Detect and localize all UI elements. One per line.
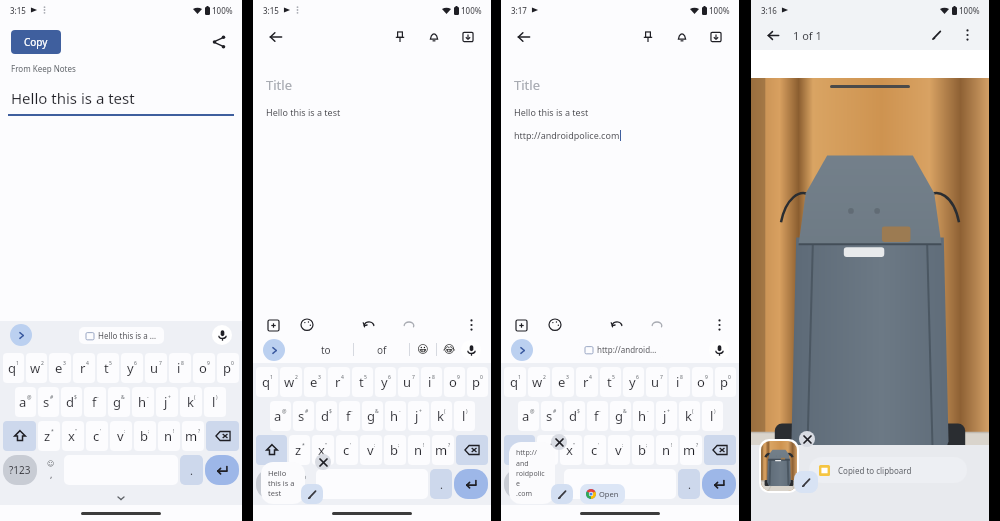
button[interactable]: y xyxy=(623,367,644,397)
button[interactable]: Reminder xyxy=(423,26,445,48)
button[interactable]: h xyxy=(385,401,406,431)
button[interactable]: k xyxy=(679,401,700,431)
button[interactable]: to xyxy=(299,343,353,357)
button[interactable]: Voice input xyxy=(212,325,232,345)
button[interactable]: s xyxy=(541,401,562,431)
button[interactable]: Dismiss xyxy=(315,454,331,470)
button[interactable]: e xyxy=(49,353,71,383)
button[interactable]: b xyxy=(632,435,654,465)
button[interactable]: l xyxy=(454,401,475,431)
button[interactable]: c xyxy=(86,421,108,451)
button[interactable]: Enter xyxy=(702,469,736,499)
button[interactable]: i xyxy=(669,367,690,397)
button[interactable]: a xyxy=(15,387,36,417)
button[interactable]: u xyxy=(646,367,667,397)
button[interactable]: Shift xyxy=(3,421,36,451)
button[interactable]: Redo xyxy=(400,316,418,334)
button[interactable]: Add xyxy=(264,316,282,334)
button[interactable]: Voice input xyxy=(709,340,729,360)
button[interactable]: Space xyxy=(316,469,428,499)
button[interactable]: Pin xyxy=(389,26,411,48)
button[interactable]: d xyxy=(61,387,82,417)
button[interactable]: ☺ xyxy=(39,455,62,485)
button[interactable]: Shift xyxy=(504,435,535,465)
button[interactable]: j xyxy=(156,387,178,417)
button[interactable]: Back xyxy=(513,26,535,48)
button[interactable]: Palette xyxy=(546,316,564,334)
button[interactable]: Archive xyxy=(457,26,479,48)
button[interactable]: o xyxy=(692,367,713,397)
button[interactable]: Backspace xyxy=(456,435,488,465)
button[interactable]: z xyxy=(38,421,60,451)
button[interactable]: m xyxy=(182,421,204,451)
button[interactable]: Voice input xyxy=(461,340,481,360)
button[interactable]: x xyxy=(312,435,334,465)
button[interactable]: u xyxy=(398,367,419,397)
button[interactable]: k xyxy=(180,387,202,417)
button[interactable]: a xyxy=(270,401,291,431)
button[interactable]: t xyxy=(97,353,119,383)
button[interactable]: http://android… xyxy=(585,344,657,355)
button[interactable]: v xyxy=(110,421,132,451)
button[interactable]: Enter xyxy=(454,469,488,499)
button[interactable]: r xyxy=(576,367,598,397)
button[interactable]: b xyxy=(384,435,406,465)
button[interactable]: j xyxy=(656,401,677,431)
button[interactable]: g xyxy=(108,387,130,417)
button[interactable]: q xyxy=(504,367,526,397)
button[interactable]: Edit xyxy=(551,484,573,504)
button[interactable]: g xyxy=(610,401,631,431)
button[interactable]: 😂 xyxy=(437,343,461,356)
button[interactable]: ?123 xyxy=(256,469,290,499)
button[interactable]: i xyxy=(421,367,442,397)
button[interactable]: Back xyxy=(265,26,287,48)
button[interactable]: Palette xyxy=(298,316,316,334)
button[interactable]: Expand suggestions xyxy=(10,324,32,346)
button[interactable]: q xyxy=(256,367,278,397)
button[interactable]: p xyxy=(715,367,736,397)
button[interactable]: t xyxy=(600,367,621,397)
button[interactable]: v xyxy=(360,435,382,465)
button[interactable]: Reminder xyxy=(671,26,693,48)
button[interactable]: z xyxy=(537,435,558,465)
button[interactable]: z xyxy=(289,435,310,465)
button[interactable]: c xyxy=(584,435,606,465)
button[interactable]: w xyxy=(528,367,550,397)
button[interactable]: Expand suggestions xyxy=(263,339,285,361)
button[interactable]: . xyxy=(678,469,700,499)
button[interactable]: a xyxy=(518,401,539,431)
button[interactable]: Backspace xyxy=(704,435,736,465)
button[interactable]: b xyxy=(134,421,156,451)
button[interactable]: ?123 xyxy=(504,469,538,499)
button[interactable]: Shift xyxy=(256,435,287,465)
button[interactable]: ☺ xyxy=(292,469,314,499)
button[interactable]: t xyxy=(352,367,373,397)
button[interactable]: Dismiss xyxy=(799,431,815,447)
button[interactable]: e xyxy=(304,367,326,397)
button[interactable]: n xyxy=(158,421,180,451)
button[interactable]: m xyxy=(432,435,454,465)
button[interactable]: Archive xyxy=(705,26,727,48)
button[interactable]: Dismiss xyxy=(551,434,567,450)
button[interactable]: Edit xyxy=(794,471,818,493)
button[interactable] xyxy=(761,441,797,491)
button[interactable]: x xyxy=(62,421,84,451)
button[interactable]: Expand suggestions xyxy=(511,339,533,361)
button[interactable]: s xyxy=(293,401,314,431)
button[interactable]: Share xyxy=(207,30,231,54)
button[interactable]: v xyxy=(608,435,630,465)
button[interactable]: o xyxy=(193,353,215,383)
button[interactable]: Space xyxy=(564,469,676,499)
button[interactable]: e xyxy=(552,367,574,397)
button[interactable]: y xyxy=(375,367,396,397)
button[interactable]: w xyxy=(26,353,47,383)
button[interactable]: l xyxy=(702,401,723,431)
button[interactable]: r xyxy=(328,367,350,397)
button[interactable]: . xyxy=(430,469,452,499)
button[interactable]: r xyxy=(73,353,95,383)
button[interactable]: d xyxy=(316,401,337,431)
button[interactable]: m xyxy=(680,435,702,465)
button[interactable]: l xyxy=(204,387,226,417)
button[interactable]: Undo xyxy=(360,316,378,334)
button[interactable]: ☺ xyxy=(540,469,562,499)
